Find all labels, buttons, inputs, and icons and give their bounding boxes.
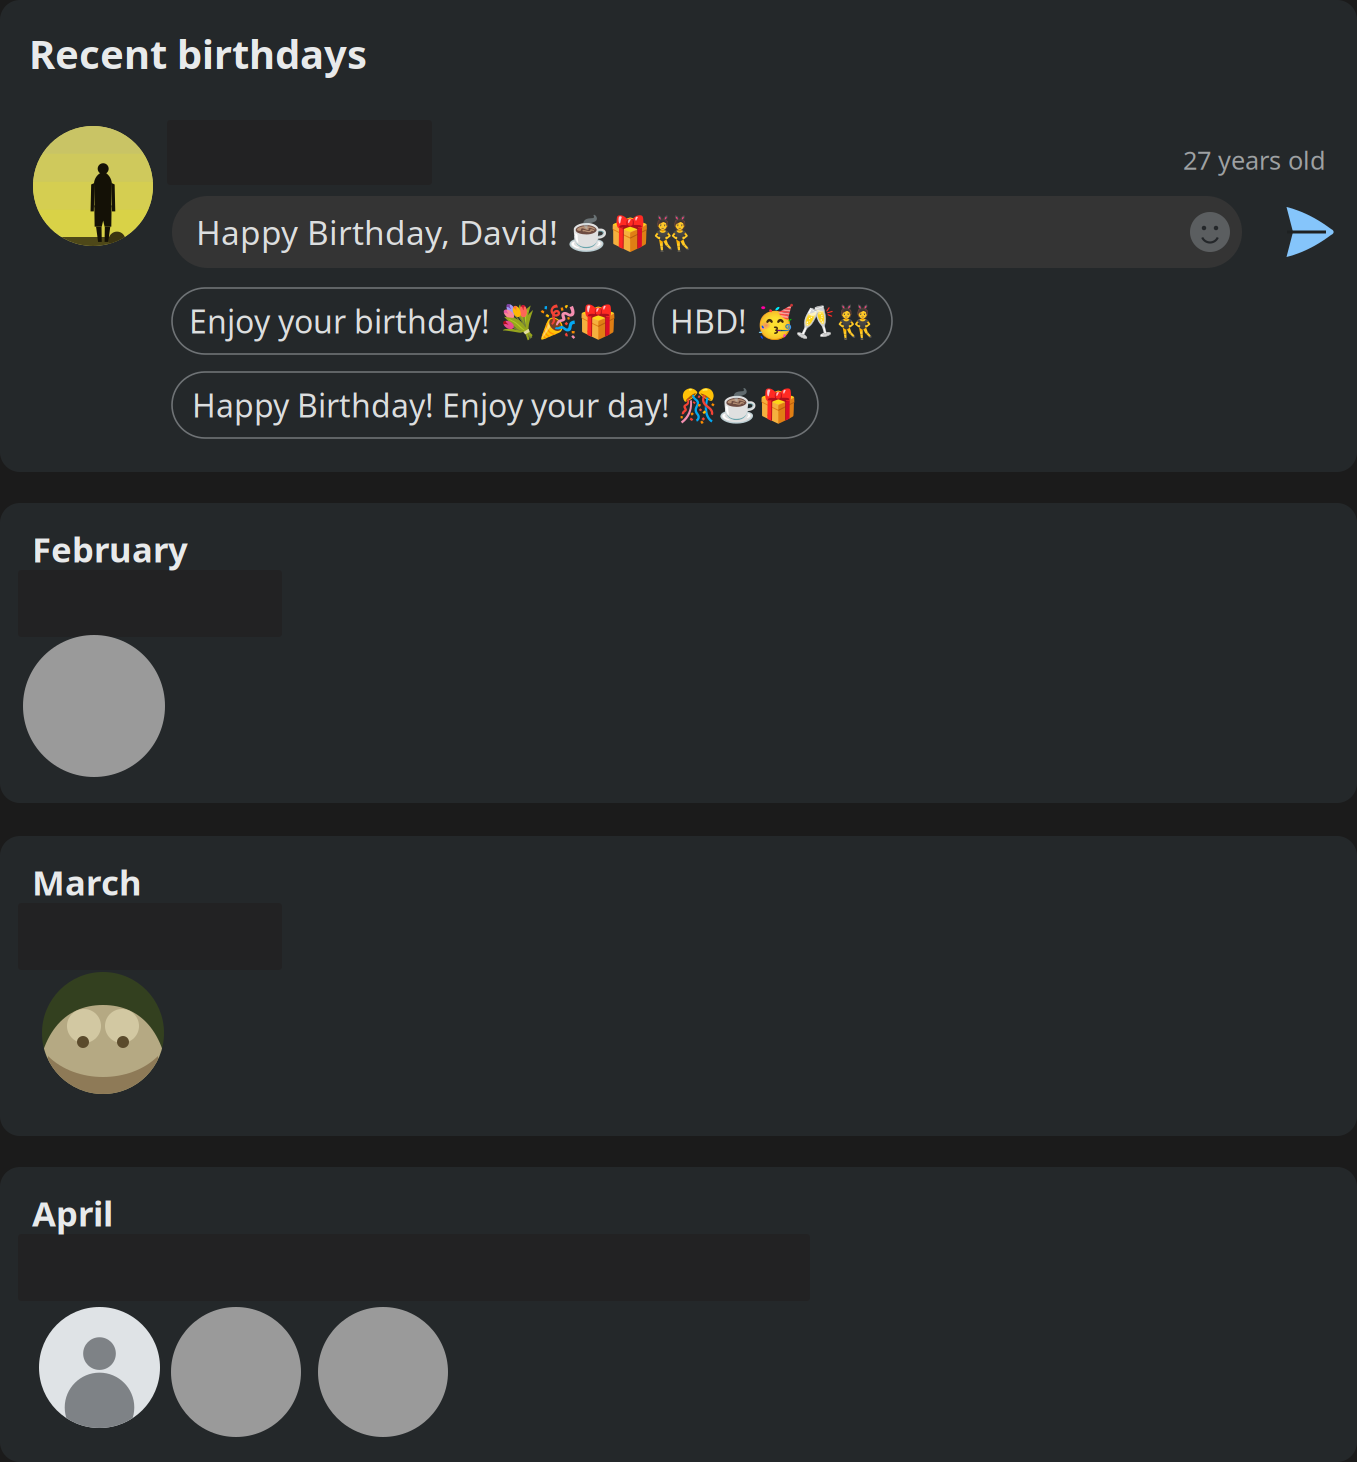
- button[interactable]: David: [33, 126, 153, 246]
- button[interactable]: Contact: [23, 635, 165, 777]
- staticText: HBD! 🥳🥂👯: [670, 300, 875, 342]
- button[interactable]: Happy Birthday! Enjoy your day! 🎊☕🎁: [172, 372, 818, 438]
- button[interactable]: Contact: [171, 1307, 301, 1437]
- staticText: Happy Birthday! Enjoy your day! 🎊☕🎁: [192, 384, 798, 426]
- button[interactable]: Contact: [318, 1307, 448, 1437]
- staticText: Recent birthdays: [29, 27, 367, 80]
- button[interactable]: Happy Birthday, David! ☕🎁👯: [172, 196, 1242, 268]
- button[interactable]: Send: [1285, 206, 1333, 258]
- staticText: Happy Birthday, David! ☕🎁👯: [196, 210, 693, 254]
- staticText: February: [32, 526, 188, 572]
- staticText: 27 years old: [1183, 143, 1326, 177]
- button[interactable]: Contact: [39, 1307, 160, 1428]
- staticText: April: [32, 1190, 113, 1236]
- button[interactable]: Enjoy your birthday! 💐🎉🎁: [172, 288, 635, 354]
- button[interactable]: HBD! 🥳🥂👯: [653, 288, 892, 354]
- staticText: March: [32, 859, 142, 905]
- staticText: Enjoy your birthday! 💐🎉🎁: [189, 300, 618, 342]
- button[interactable]: Contact: [42, 972, 164, 1094]
